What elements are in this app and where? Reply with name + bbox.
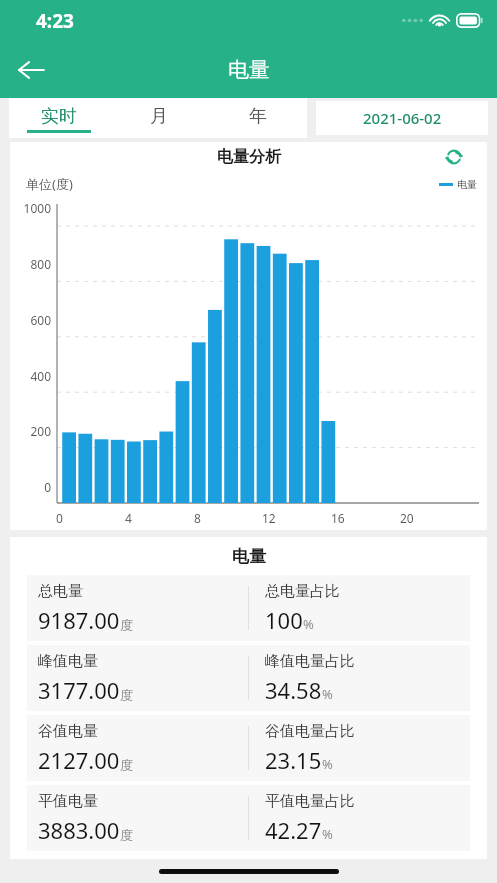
staticText: 2021-06-02 [363, 108, 442, 128]
staticText: 电量分析 [217, 147, 281, 167]
staticText: 12 [262, 510, 276, 526]
staticText: 度 [120, 827, 133, 843]
staticText: 800 [10, 256, 51, 272]
staticText: 4:23 [36, 8, 74, 34]
staticText: 年 [249, 105, 267, 128]
button[interactable]: 月 [109, 98, 208, 138]
staticText: 电量 [232, 546, 266, 567]
staticText: 度 [120, 757, 133, 773]
staticText: 总电量占比 [265, 582, 340, 601]
button[interactable]: 年 [208, 98, 307, 138]
staticText: 平值电量 [38, 792, 98, 811]
staticText: 峰值电量占比 [265, 652, 355, 671]
staticText: 4 [125, 510, 132, 526]
staticText: 电量 [228, 57, 270, 83]
button[interactable]: 谷值电量 [27, 715, 470, 781]
staticText: 9187.00 [38, 605, 120, 635]
button[interactable]: 平值电量 [27, 785, 470, 851]
staticText: 20 [400, 510, 414, 526]
staticText: % [322, 755, 333, 773]
staticText: 平值电量占比 [265, 792, 355, 811]
staticText: 2127.00 [38, 745, 120, 775]
staticText: 3883.00 [38, 815, 120, 845]
staticText: 1000 [10, 200, 51, 216]
staticText: 42.27 [265, 815, 322, 845]
button[interactable]: Refresh [441, 144, 467, 170]
staticText: 电量 [457, 178, 477, 191]
staticText: 总电量 [38, 582, 83, 601]
button[interactable]: 实时 [9, 98, 109, 138]
button[interactable]: 总电量 [27, 575, 470, 641]
staticText: % [322, 685, 333, 703]
staticText: 100 [265, 605, 303, 635]
staticText: % [322, 825, 333, 843]
staticText: 0 [10, 479, 51, 495]
staticText: % [303, 615, 314, 633]
button[interactable]: Back [6, 45, 56, 95]
staticText: 8 [194, 510, 201, 526]
staticText: 0 [56, 510, 63, 526]
staticText: 16 [331, 510, 345, 526]
staticText: 谷值电量占比 [265, 722, 355, 741]
button[interactable]: 峰值电量 [27, 645, 470, 711]
staticText: 23.15 [265, 745, 322, 775]
staticText: 峰值电量 [38, 652, 98, 671]
staticText: 月 [150, 105, 168, 128]
staticText: 34.58 [265, 675, 322, 705]
staticText: 200 [10, 423, 51, 439]
staticText: 度 [120, 687, 133, 703]
staticText: 400 [10, 368, 51, 384]
staticText: 600 [10, 312, 51, 328]
staticText: 实时 [41, 105, 77, 128]
staticText: 单位(度) [26, 175, 73, 193]
button[interactable]: 2021-06-02 [316, 101, 488, 135]
staticText: 谷值电量 [38, 722, 98, 741]
staticText: 3177.00 [38, 675, 120, 705]
staticText: 度 [120, 617, 133, 633]
